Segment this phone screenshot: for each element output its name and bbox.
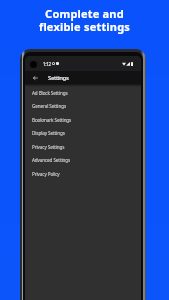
staticText: General Settings [32, 103, 67, 109]
button[interactable]: General Settings [25, 99, 141, 113]
staticText: Complete and flexible settings [0, 6, 169, 34]
button[interactable]: Ad Block Settings [25, 86, 141, 100]
button[interactable]: Privacy Settings [25, 140, 141, 154]
staticText: Ad Block Settings [32, 90, 68, 96]
button[interactable]: Privacy Policy [25, 167, 141, 181]
staticText: Bookmark Settings [32, 117, 72, 123]
button[interactable]: Bookmark Settings [25, 113, 141, 127]
staticText: Display Settings [32, 130, 65, 136]
staticText: Settings [48, 74, 69, 82]
staticText: 1:12 [43, 61, 51, 67]
staticText: Advanced Settings [32, 157, 71, 163]
button[interactable]: Settings [48, 74, 69, 82]
button[interactable]: Advanced Settings [25, 153, 141, 167]
staticText: Privacy Policy [32, 171, 60, 177]
button[interactable]: Back [29, 71, 42, 84]
button[interactable]: Display Settings [25, 126, 141, 140]
staticText: Privacy Settings [32, 144, 65, 150]
